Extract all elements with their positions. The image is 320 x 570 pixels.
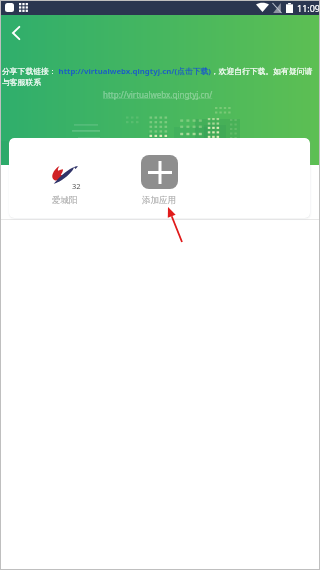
staticText: 添加应用: [142, 195, 176, 206]
button[interactable]: 添加应用: [112, 138, 206, 218]
button[interactable]: Back: [3, 20, 29, 46]
button[interactable]: 32: [18, 138, 112, 218]
staticText: 32: [72, 181, 81, 191]
staticText: 分享下载链接： http://virtualwebx.qingtyj.cn/(点…: [2, 66, 320, 88]
staticText: 11:09: [297, 2, 320, 14]
staticText: http://virtualwebx.qingtyj.cn/: [103, 89, 213, 100]
staticText: 爱城阳: [52, 195, 78, 206]
